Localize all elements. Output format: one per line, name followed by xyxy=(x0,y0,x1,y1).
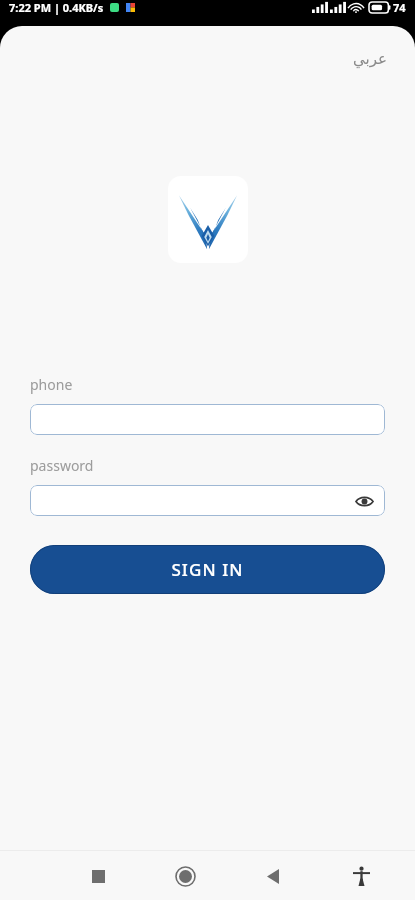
staticText: password xyxy=(30,456,94,475)
button[interactable]: Recents xyxy=(76,854,120,898)
button[interactable]: Home xyxy=(163,854,207,898)
button[interactable]: Accessibility xyxy=(339,854,383,898)
staticText: 7:22 PM | 0.4KB/s xyxy=(9,0,104,15)
staticText: SIGN IN xyxy=(171,558,244,581)
button[interactable]: عربي xyxy=(347,46,393,71)
staticText: phone xyxy=(30,375,73,394)
button[interactable]: Show password xyxy=(353,490,375,512)
button[interactable] xyxy=(30,404,385,435)
button[interactable]: Show password xyxy=(30,485,385,516)
staticText: 74 xyxy=(393,0,406,15)
button[interactable]: Back xyxy=(251,854,295,898)
button[interactable]: SIGN IN xyxy=(30,545,385,594)
staticText: عربي xyxy=(353,50,387,67)
